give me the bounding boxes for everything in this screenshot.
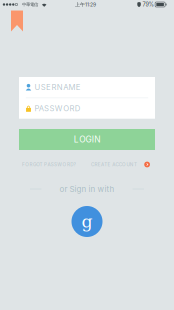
- button[interactable]: CREATE ACCOUNT: [91, 161, 150, 167]
- staticText: USERNAME: [34, 83, 81, 92]
- button[interactable]: LOGIN: [19, 129, 155, 150]
- staticText: PASSWORD: [34, 104, 81, 113]
- staticText: LOGIN: [74, 134, 100, 145]
- staticText: or Sign in with: [59, 184, 114, 194]
- button[interactable]: PASSWORD: [19, 98, 155, 119]
- staticText: 中華電信: [22, 2, 38, 7]
- staticText: FORGOT PASSWORD?: [22, 162, 75, 167]
- staticText: 上午11:29: [75, 1, 96, 8]
- staticText: 79%: [142, 1, 153, 8]
- staticText: CREATE ACCOUNT: [91, 162, 137, 167]
- staticText: g: [81, 211, 92, 232]
- button[interactable]: USERNAME: [19, 77, 155, 97]
- button[interactable]: FORGOT PASSWORD?: [22, 161, 75, 167]
- button[interactable]: Sign in with Google: [71, 206, 102, 237]
